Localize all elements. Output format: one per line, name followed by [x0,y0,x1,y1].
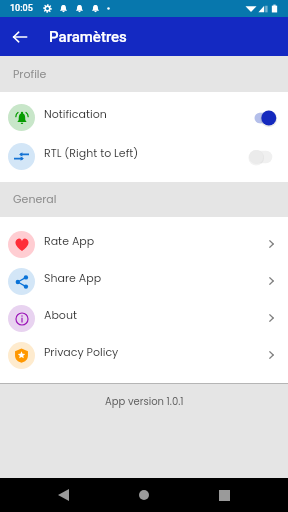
staticText: Notification [44,106,248,121]
button[interactable]: Notification [0,98,288,137]
button[interactable]: Rate App [0,226,288,263]
button[interactable]: Privacy Policy [0,337,288,374]
staticText: Profile [13,66,47,81]
staticText: Share App [44,270,269,285]
staticText: Privacy Policy [44,344,269,359]
staticText: RTL (Right to Left) [44,145,248,160]
staticText: General [13,191,57,206]
staticText: About [44,307,269,322]
button[interactable]: Back [0,17,39,56]
button[interactable]: Share App [0,263,288,300]
button[interactable]: RTL (Right to Left) [0,137,288,176]
staticText: App version 1.0.1 [105,394,184,408]
button[interactable]: Home [127,478,161,512]
button[interactable]: About [0,300,288,337]
button[interactable]: Back [46,478,80,512]
staticText: Rate App [44,233,269,248]
staticText: 10:05 [10,3,33,14]
staticText: Paramètres [49,28,127,46]
button[interactable]: Recents [207,478,241,512]
